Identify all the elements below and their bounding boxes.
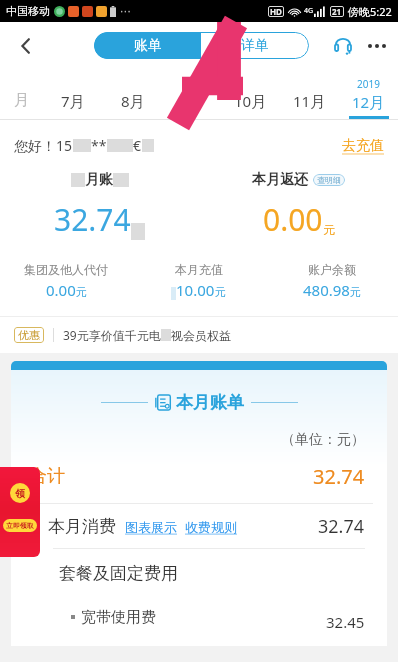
staticText: 集团及他人代付 <box>24 262 108 277</box>
staticText: 0.00 <box>46 280 76 300</box>
staticText: 本月账单 <box>176 392 244 413</box>
button[interactable]: 10月 <box>221 69 280 119</box>
staticText: 中国移动 <box>6 4 50 18</box>
button[interactable]: 11月 <box>280 69 339 119</box>
staticText: 图表展示 <box>125 519 177 535</box>
staticText: 视会员权益 <box>171 328 231 343</box>
staticText: ⋯ <box>120 5 131 18</box>
button[interactable]: 去充值 <box>342 137 384 155</box>
staticText: 12月 <box>352 92 385 112</box>
staticText: 2019 <box>357 77 380 91</box>
staticText: 账单 <box>134 37 162 55</box>
staticText: 查明细 <box>317 175 341 185</box>
button[interactable]: 合计 <box>29 463 365 490</box>
staticText: 10月 <box>234 91 267 111</box>
staticText: ** <box>91 136 107 155</box>
staticText: 收费规则 <box>185 519 237 535</box>
button[interactable]: 详单 <box>201 32 309 59</box>
staticText: 39元享价值千元电 <box>63 327 161 343</box>
button[interactable]: 8月 <box>103 69 162 119</box>
button[interactable]: 9月 <box>162 69 221 119</box>
staticText: 优惠 <box>18 328 40 342</box>
staticText: 宽带使用费 <box>81 608 156 627</box>
staticText: 元 <box>215 285 226 299</box>
staticText: 10.00 <box>176 280 215 300</box>
staticText: 本月充值 <box>175 262 223 277</box>
button[interactable]: Back <box>0 22 52 69</box>
staticText: 账户余额 <box>308 262 356 277</box>
staticText: 480.98 <box>303 280 350 300</box>
button[interactable]: 收费规则 <box>185 519 237 535</box>
staticText: 详单 <box>241 37 269 55</box>
staticText: 套餐及固定费用 <box>59 563 178 584</box>
staticText: （单位：元） <box>11 431 365 449</box>
button[interactable]: 领红包 <box>0 467 40 557</box>
button[interactable]: 7月 <box>43 69 103 119</box>
staticText: 8月 <box>121 91 145 111</box>
staticText: HD <box>270 6 282 17</box>
button[interactable]: 本月消费 <box>21 514 365 539</box>
staticText: 11月 <box>293 91 326 111</box>
button[interactable]: 客服 <box>328 31 358 61</box>
button[interactable]: 查明细 <box>317 175 341 185</box>
staticText: 本月消费 <box>48 516 116 537</box>
staticText: 7月 <box>61 91 85 111</box>
staticText: 元 <box>76 285 87 299</box>
button[interactable]: 2019 <box>339 69 398 119</box>
staticText: 32.74 <box>54 199 131 240</box>
staticText: 21 <box>332 6 342 17</box>
staticText: 傍晚5:22 <box>348 4 392 19</box>
staticText: 9月 <box>180 91 204 111</box>
staticText: 月 <box>14 91 29 110</box>
button[interactable]: 图表展示 <box>125 519 177 535</box>
staticText: 4G <box>304 6 314 16</box>
staticText: 月账 <box>85 171 113 189</box>
staticText: 元 <box>323 222 335 237</box>
staticText: 32.74 <box>313 463 365 490</box>
staticText: 您好！15 <box>14 136 73 155</box>
staticText: 元 <box>350 285 361 299</box>
button[interactable]: 优惠 <box>14 317 384 353</box>
staticText: 去充值 <box>342 137 384 155</box>
staticText: € <box>133 136 142 155</box>
staticText: 合计 <box>29 465 65 488</box>
staticText: 32.45 <box>326 612 365 632</box>
staticText: 本月返还 <box>252 171 308 189</box>
staticText: 领 <box>15 487 25 500</box>
staticText: 32.74 <box>318 514 365 539</box>
button[interactable]: 账单 <box>94 32 201 59</box>
button[interactable]: 月 <box>0 69 43 119</box>
button[interactable]: 更多 <box>360 29 394 63</box>
staticText: 立即领取 <box>6 521 34 530</box>
staticText: 0.00 <box>263 199 323 240</box>
